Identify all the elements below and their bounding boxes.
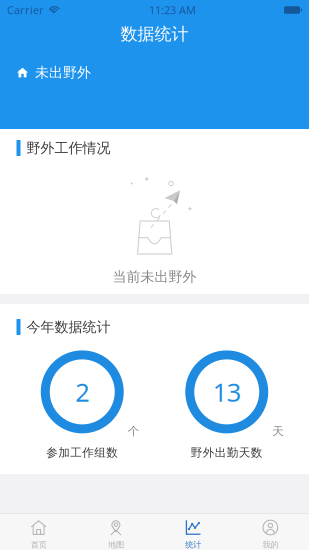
staticText: 2 (75, 375, 89, 409)
staticText: 天 (272, 424, 284, 438)
staticText: 11:23 AM (149, 3, 196, 17)
staticText: 参加工作组数 (46, 445, 118, 460)
staticText: 当前未出野外 (112, 268, 196, 286)
button[interactable]: 统计 (154, 513, 232, 550)
button[interactable]: 我的 (232, 513, 309, 550)
staticText: 地图 (108, 539, 124, 550)
staticText: Carrier (7, 3, 44, 17)
staticText: 野外工作情况 (26, 139, 110, 157)
staticText: 首页 (31, 539, 47, 550)
button[interactable]: 地图 (77, 513, 154, 550)
staticText: 数据统计 (120, 23, 188, 45)
staticText: 未出野外 (35, 64, 91, 81)
staticText: 我的 (262, 539, 278, 550)
button[interactable]: 未出野外 (0, 48, 309, 97)
button[interactable]: 首页 (0, 513, 77, 550)
staticText: 13 (213, 375, 241, 409)
staticText: 野外出勤天数 (191, 445, 263, 460)
staticText: 统计 (185, 539, 201, 550)
staticText: 今年数据统计 (26, 318, 110, 336)
staticText: 个 (128, 424, 140, 438)
